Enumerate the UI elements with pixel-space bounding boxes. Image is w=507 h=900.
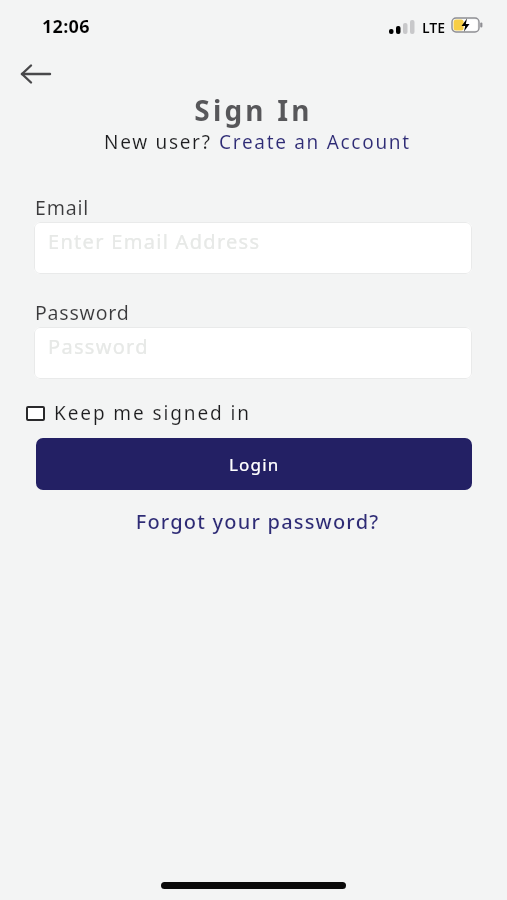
button[interactable]: Enter Email Address: [34, 222, 472, 274]
staticText: Keep me signed in: [54, 400, 251, 426]
staticText: Password: [35, 299, 130, 326]
staticText: Enter Email Address: [48, 228, 261, 255]
button[interactable]: Password: [34, 327, 472, 379]
button[interactable]: Forgot your password?: [4, 508, 507, 535]
staticText: Password: [48, 333, 149, 360]
button[interactable]: Create an Account: [219, 129, 411, 155]
button[interactable]: Login: [36, 438, 472, 490]
staticText: Sign In: [0, 91, 507, 129]
staticText: 12:06: [42, 14, 90, 39]
staticText: Email: [35, 194, 90, 221]
staticText: Login: [229, 453, 280, 476]
staticText: New user?: [104, 129, 219, 155]
staticText: LTE: [422, 18, 446, 37]
button[interactable]: Keep me signed in: [26, 400, 251, 426]
button[interactable]: [14, 58, 58, 90]
